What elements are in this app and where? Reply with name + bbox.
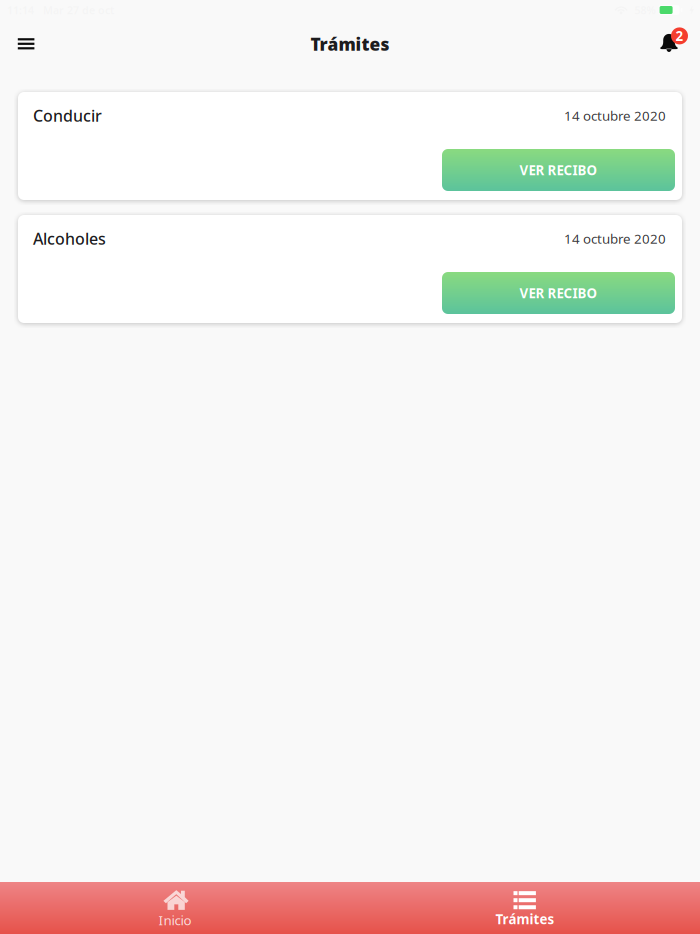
button[interactable]: VER RECIBO bbox=[442, 149, 675, 191]
staticText: Trámites bbox=[310, 32, 389, 55]
staticText: 14 octubre 2020 bbox=[564, 230, 666, 247]
button[interactable]: Trámites bbox=[350, 882, 700, 934]
staticText: 2 bbox=[675, 27, 683, 45]
staticText: VER RECIBO bbox=[519, 161, 597, 179]
button[interactable]: VER RECIBO bbox=[442, 272, 675, 314]
button[interactable]: Menu bbox=[0, 20, 50, 66]
staticText: VER RECIBO bbox=[519, 284, 597, 302]
staticText: Alcoholes bbox=[33, 228, 106, 249]
button[interactable]: Notifications bbox=[650, 20, 700, 66]
staticText: Conducir bbox=[33, 105, 102, 126]
staticText: Trámites bbox=[495, 910, 554, 928]
staticText: 14 octubre 2020 bbox=[564, 107, 666, 124]
button[interactable]: Inicio bbox=[0, 882, 350, 934]
staticText: Inicio bbox=[158, 911, 191, 929]
